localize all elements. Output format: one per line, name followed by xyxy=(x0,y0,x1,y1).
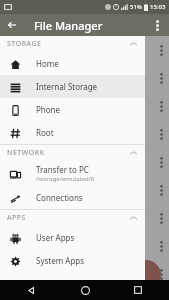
button[interactable]: Phone xyxy=(0,98,145,121)
staticText: Root xyxy=(36,127,54,138)
button[interactable]: Home xyxy=(0,52,145,75)
staticText: APPS xyxy=(7,213,26,223)
button[interactable]: Connections xyxy=(0,186,145,209)
button[interactable]: Recent apps xyxy=(129,281,147,299)
staticText: System Apps xyxy=(36,255,85,266)
staticText: STORAGE xyxy=(7,39,42,49)
staticText: Phone xyxy=(36,104,61,115)
staticText: Internal Storage xyxy=(36,81,98,92)
staticText: Home xyxy=(36,58,59,69)
button[interactable]: Root xyxy=(0,121,145,144)
button[interactable]: Back xyxy=(3,16,21,34)
button[interactable]: Internal Storage xyxy=(0,75,145,98)
button[interactable]: New xyxy=(131,260,161,290)
staticText: 51% xyxy=(130,3,142,11)
staticText: /storage/emulated/0 xyxy=(36,175,95,183)
staticText: NETWORK xyxy=(7,148,45,158)
button[interactable]: More options xyxy=(148,16,166,34)
staticText: Connections xyxy=(36,192,83,203)
button[interactable]: Back xyxy=(22,281,40,299)
button[interactable]: User Apps xyxy=(0,226,145,249)
staticText: Transfer to PC xyxy=(36,164,89,175)
staticText: User Apps xyxy=(36,232,75,243)
button[interactable]: Home xyxy=(76,281,94,299)
staticText: File Manager xyxy=(34,18,103,33)
staticText: 15:03 xyxy=(150,3,166,11)
button[interactable]: System Apps xyxy=(0,249,145,272)
button[interactable]: Transfer to PC xyxy=(0,161,145,186)
